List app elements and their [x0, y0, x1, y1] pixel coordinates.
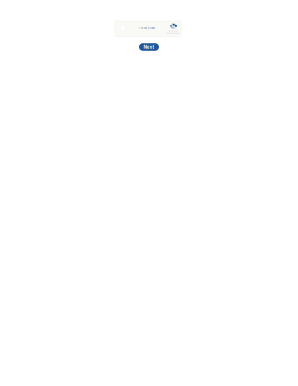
button[interactable]: I'm not a robot	[115, 21, 163, 36]
staticText: Privacy - Terms	[166, 32, 178, 34]
button[interactable]: Next	[139, 43, 159, 51]
staticText: I'm not a robot	[139, 27, 155, 29]
staticText: Next	[143, 44, 154, 50]
button[interactable]: reCAPTCHA — Privacy and Terms	[163, 21, 181, 36]
